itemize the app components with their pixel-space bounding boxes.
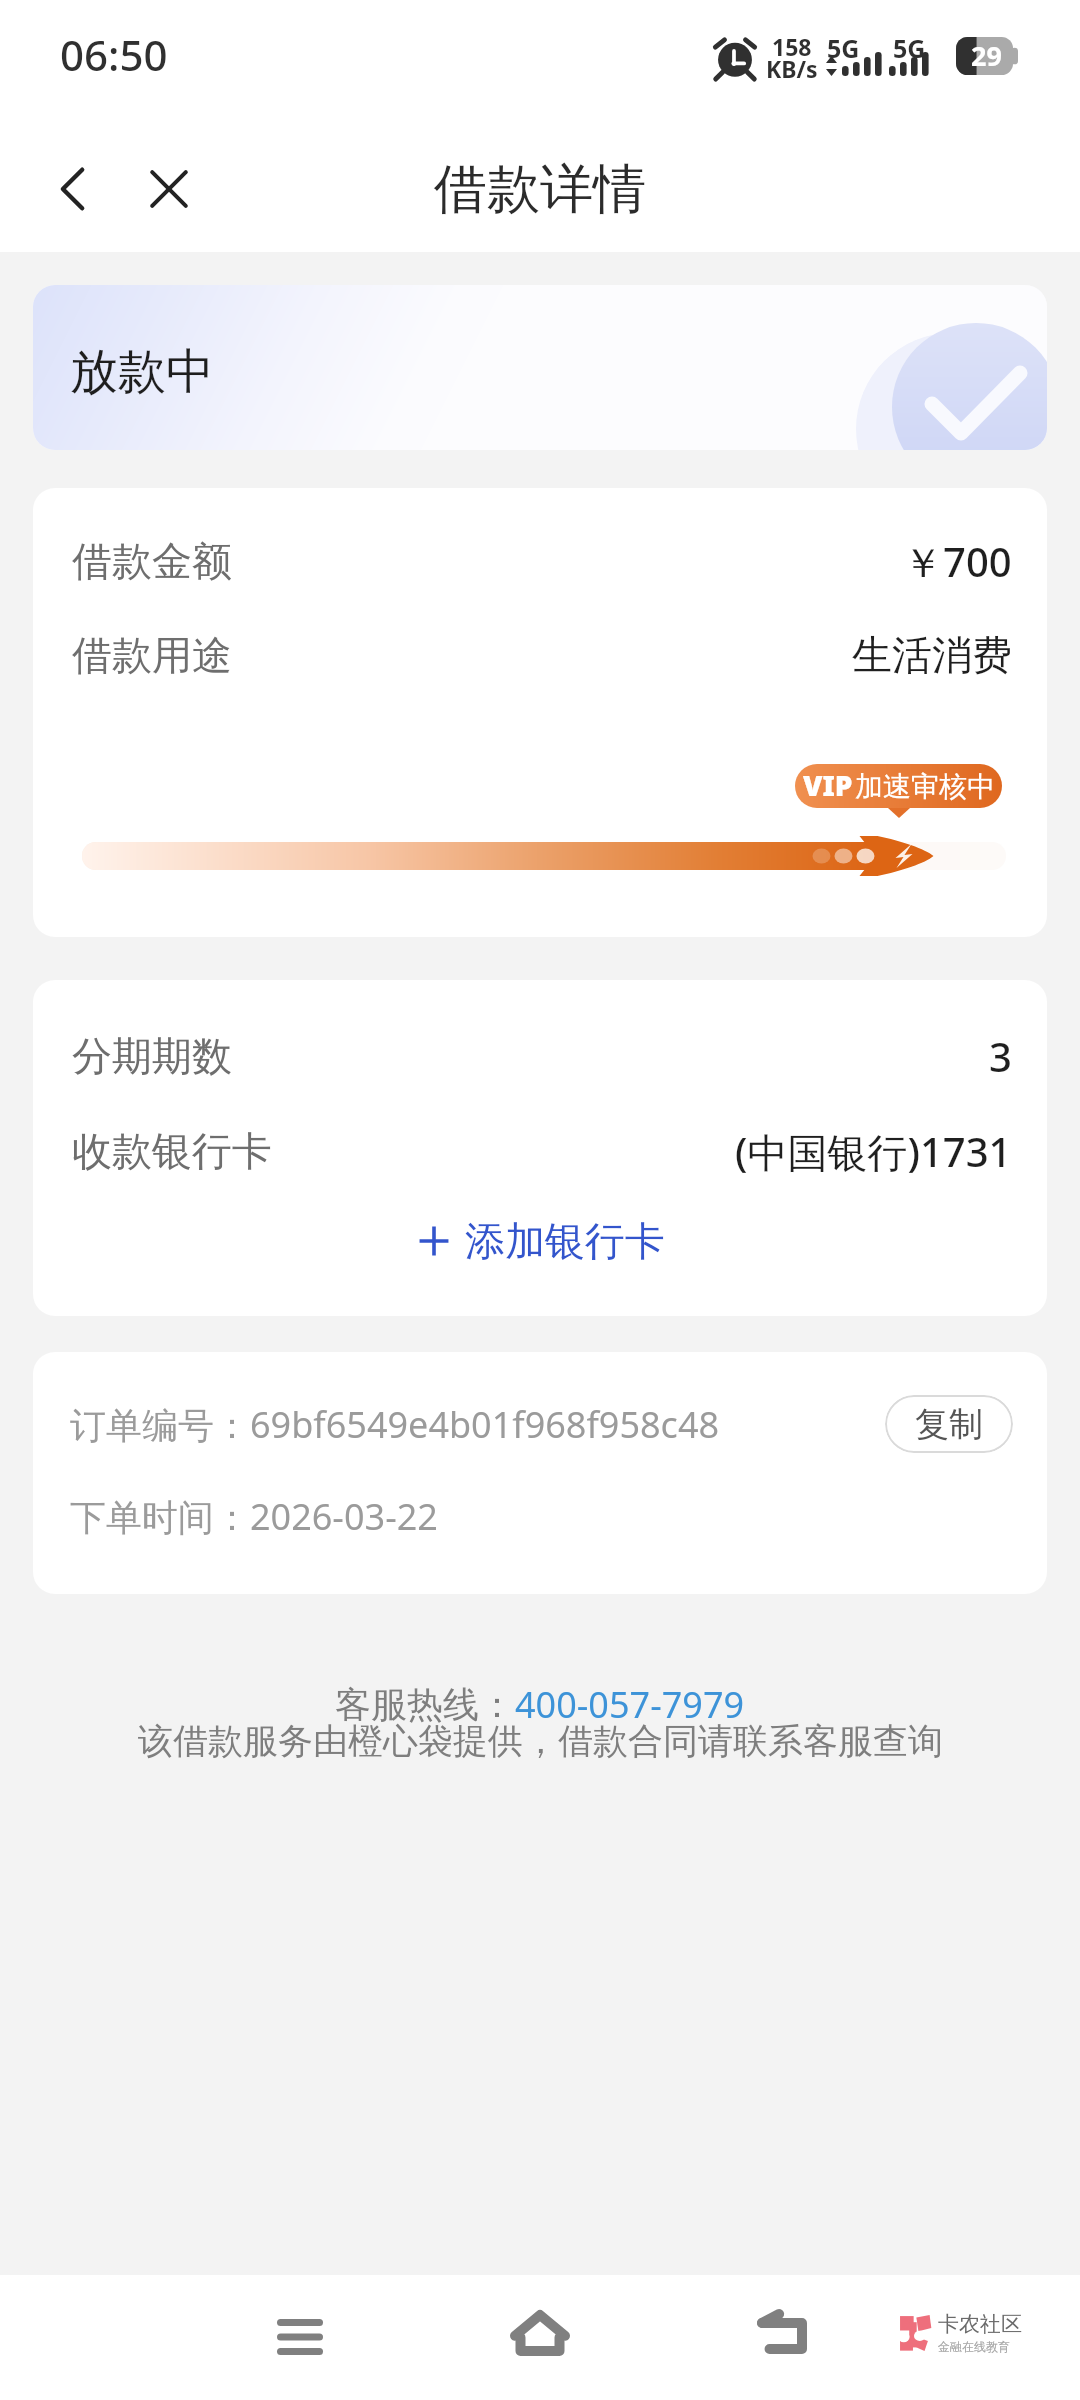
staticText: 生活消费: [852, 630, 1012, 680]
staticText: 29: [971, 37, 1002, 74]
button[interactable]: Back: [723, 2271, 843, 2395]
staticText: 添加银行卡: [465, 1216, 665, 1266]
staticText: 分期期数: [72, 1031, 232, 1081]
staticText: 客服热线：: [335, 1682, 515, 1727]
staticText: 放款中: [70, 342, 214, 402]
staticText: 借款详情: [434, 156, 646, 223]
staticText: 158: [772, 31, 812, 62]
staticText: 卡农社区: [938, 2311, 1022, 2337]
staticText: 下单时间：2026-03-22: [70, 1492, 438, 1541]
button[interactable]: Recent apps: [240, 2275, 360, 2399]
staticText: VIP: [803, 766, 853, 804]
button[interactable]: 复制: [885, 1395, 1013, 1453]
staticText: 收款银行卡: [72, 1126, 272, 1176]
button[interactable]: Home: [480, 2271, 600, 2395]
staticText: 订单编号：69bf6549e4b01f968f958c48: [70, 1400, 720, 1449]
staticText: 借款用途: [72, 630, 232, 680]
staticText: 借款金额: [72, 536, 232, 586]
staticText: (中国银行)1731: [735, 1124, 1012, 1179]
button[interactable]: 400-057-7979: [515, 1680, 745, 1729]
staticText: KB/s: [766, 53, 818, 84]
staticText: 加速审核中: [855, 769, 995, 804]
button[interactable]: 添加银行卡: [395, 1208, 685, 1274]
button[interactable]: Back: [29, 145, 117, 233]
staticText: 5G: [827, 31, 860, 65]
staticText: 金融在线教育: [938, 2339, 1010, 2354]
staticText: 06:50: [60, 26, 168, 83]
staticText: 复制: [915, 1403, 983, 1446]
button[interactable]: Close: [125, 145, 213, 233]
staticText: 3: [989, 1029, 1012, 1083]
staticText: ￥700: [903, 534, 1012, 589]
staticText: 该借款服务由橙心袋提供，借款合同请联系客服查询: [138, 1719, 943, 1763]
staticText: 5G: [893, 31, 926, 65]
